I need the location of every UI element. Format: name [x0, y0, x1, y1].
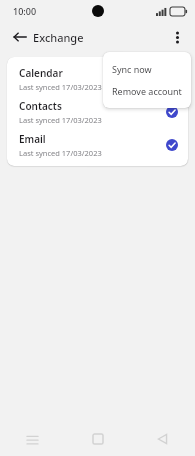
staticText: Last synced 17/03/2023 [19, 82, 102, 92]
button[interactable]: Calendar [7, 62, 188, 95]
staticText: Email [19, 132, 46, 146]
staticText: Sync now [112, 63, 152, 75]
staticText: Remove account [112, 85, 182, 97]
staticText: Exchange [33, 30, 84, 45]
button[interactable]: Recent apps [0, 422, 65, 456]
button[interactable]: Sync now [103, 58, 191, 80]
button[interactable]: Back [130, 422, 195, 456]
staticText: Contacts [19, 99, 62, 113]
button[interactable]: Contacts [7, 95, 188, 128]
button[interactable]: Back [6, 23, 34, 51]
staticText: Last synced 17/03/2023 [19, 148, 102, 158]
staticText: 10:00 [13, 5, 37, 17]
staticText: Calendar [19, 66, 63, 80]
button[interactable]: Remove account [103, 80, 191, 102]
button[interactable]: Home [65, 422, 130, 456]
staticText: Last synced 17/03/2023 [19, 115, 102, 125]
button[interactable]: More options [164, 24, 190, 50]
button[interactable]: Email [7, 128, 188, 161]
